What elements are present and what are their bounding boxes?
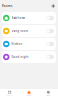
staticText: Devices <box>7 94 13 96</box>
button[interactable]: Back home <box>2 12 56 24</box>
button[interactable]: Kitchen <box>2 38 56 50</box>
button[interactable]: Settings <box>39 91 58 98</box>
staticText: Home <box>27 94 31 96</box>
button[interactable]: Add <box>50 3 56 9</box>
button[interactable]: Good night <box>2 51 56 63</box>
staticText: Kitchen <box>11 42 22 46</box>
staticText: Back home <box>11 16 25 20</box>
staticText: Living room <box>11 29 27 33</box>
button[interactable]: Home <box>19 91 39 98</box>
staticText: Settings <box>46 94 51 96</box>
button[interactable]: Living room <box>2 25 56 37</box>
button[interactable]: Devices <box>0 91 19 98</box>
staticText: Good night <box>11 55 28 59</box>
staticText: Rooms <box>2 4 12 8</box>
